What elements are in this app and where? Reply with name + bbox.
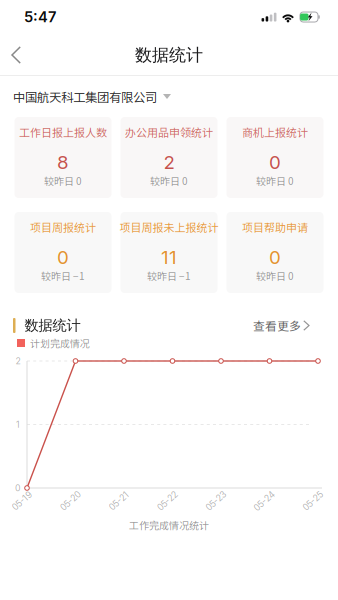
staticText: 2 — [15, 356, 20, 366]
staticText: 较昨日 0 — [44, 173, 82, 188]
staticText: 1 — [16, 419, 20, 430]
staticText: 11 — [161, 246, 177, 268]
staticText: 计划完成情况 — [30, 336, 90, 350]
staticText: 项目周报未上报统计 — [119, 219, 218, 235]
staticText: 05-23 — [204, 496, 228, 506]
staticText: 0 — [57, 246, 69, 268]
staticText: 05-19 — [10, 496, 33, 506]
staticText: 工作完成情况统计 — [129, 518, 209, 532]
staticText: 0 — [269, 151, 281, 173]
staticText: 8 — [57, 151, 69, 173]
staticText: 较昨日 0 — [256, 173, 294, 188]
staticText: 数据统计 — [135, 44, 203, 66]
button[interactable]: 工作日报上报人数 — [14, 117, 111, 198]
staticText: 较昨日 −1 — [147, 268, 191, 283]
staticText: 0 — [15, 483, 21, 493]
staticText: 2 — [163, 151, 174, 173]
staticText: 较昨日 −1 — [41, 268, 85, 283]
button[interactable]: 项目帮助申请 — [226, 212, 323, 293]
staticText: 商机上报统计 — [242, 124, 308, 140]
staticText: 0 — [269, 246, 281, 268]
button[interactable]: 查看更多 — [253, 317, 310, 334]
staticText: 数据统计 — [24, 316, 80, 334]
staticText: 办公用品申领统计 — [125, 124, 213, 140]
staticText: 5:47 — [24, 8, 56, 26]
button[interactable]: Back — [0, 34, 31, 76]
staticText: 查看更多 — [253, 317, 301, 334]
button[interactable]: 中国航天科工集团有限公司 — [0, 76, 184, 117]
staticText: 中国航天科工集团有限公司 — [13, 87, 157, 105]
staticText: 05-21 — [107, 496, 130, 506]
staticText: 05-22 — [155, 496, 179, 506]
staticText: 项目帮助申请 — [242, 219, 308, 235]
staticText: 项目周报统计 — [30, 219, 96, 235]
staticText: 较昨日 0 — [150, 173, 188, 188]
staticText: 05-24 — [252, 496, 277, 506]
button[interactable]: 商机上报统计 — [226, 117, 323, 198]
staticText: 05-25 — [301, 496, 325, 506]
button[interactable]: 办公用品申领统计 — [120, 117, 217, 198]
button[interactable]: 项目周报统计 — [14, 212, 111, 293]
staticText: 工作日报上报人数 — [19, 124, 107, 140]
button[interactable]: 项目周报未上报统计 — [120, 212, 217, 293]
staticText: 05-20 — [58, 496, 82, 506]
staticText: 较昨日 0 — [256, 268, 294, 283]
